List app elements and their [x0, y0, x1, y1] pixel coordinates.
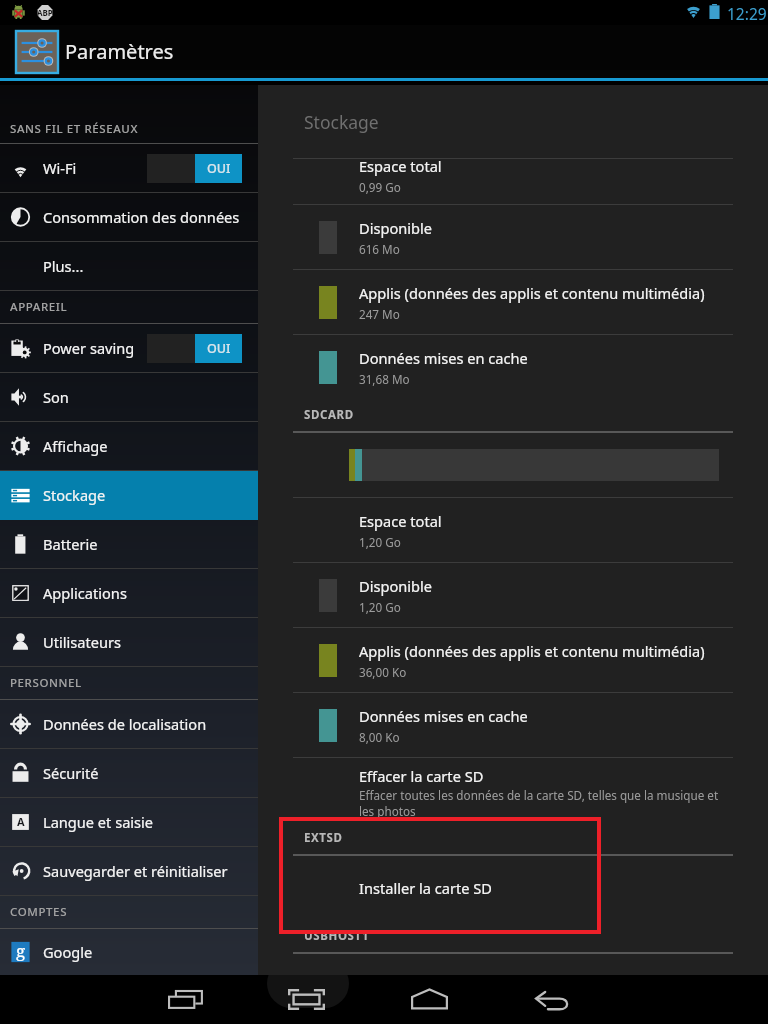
staticText: Effacer toutes les données de la carte S… [359, 787, 719, 820]
staticText: 247 Mo [359, 306, 400, 322]
staticText: Utilisateurs [43, 632, 121, 652]
button[interactable]: Plus... [0, 242, 258, 290]
staticText: Effacer la carte SD [359, 766, 484, 786]
staticText: Données de localisation [43, 714, 207, 734]
button[interactable]: Données mises en cache [258, 335, 768, 399]
button[interactable]: Installer la carte SD [258, 856, 768, 920]
staticText: APPAREIL [10, 299, 68, 315]
staticText: Applications [43, 583, 127, 603]
button[interactable]: A [0, 798, 258, 846]
staticText: g [16, 939, 26, 961]
staticText: Applis (données des applis et contenu mu… [359, 641, 768, 661]
button[interactable]: Wi-Fi [0, 144, 258, 192]
staticText: Données mises en cache [359, 706, 768, 726]
staticText: Stockage [43, 485, 106, 505]
button[interactable]: Recent apps [168, 991, 204, 1010]
staticText: Langue et saisie [43, 812, 154, 832]
staticText: 0,99 Go [359, 179, 401, 195]
staticText: Espace total [359, 156, 442, 176]
staticText: OUI [207, 160, 231, 177]
button[interactable]: g [0, 929, 258, 975]
staticText: Données mises en cache [359, 348, 768, 368]
staticText: Power saving [43, 338, 135, 358]
button[interactable]: Espace total [258, 498, 768, 562]
staticText: Sauvegarder et réinitialiser [43, 861, 228, 881]
button[interactable]: Disponible [258, 205, 768, 269]
button[interactable]: Stockage [0, 471, 258, 519]
staticText: ABP [37, 7, 53, 18]
button[interactable]: Screenshot [288, 989, 325, 1010]
button[interactable]: Applis (données des applis et contenu mu… [258, 628, 768, 692]
button[interactable]: Applications [0, 569, 258, 617]
staticText: 8,00 Ko [359, 729, 400, 745]
staticText: Disponible [359, 218, 768, 238]
staticText: Disponible [359, 576, 768, 596]
staticText: Affichage [43, 436, 108, 456]
button[interactable]: Applis (données des applis et contenu mu… [258, 270, 768, 334]
staticText: Google [43, 942, 93, 962]
staticText: Installer la carte SD [359, 878, 492, 898]
staticText: Paramètres [65, 38, 174, 65]
button[interactable]: Settings [15, 30, 59, 74]
button[interactable]: Disponible [258, 563, 768, 627]
staticText: USBHOST1 [304, 928, 369, 944]
staticText: 12:29 [727, 3, 767, 24]
staticText: Sécurité [43, 763, 99, 783]
staticText: SANS FIL ET RÉSEAUX [10, 121, 139, 137]
staticText: EXTSD [304, 830, 343, 846]
button[interactable]: Sauvegarder et réinitialiser [0, 847, 258, 895]
staticText: COMPTES [10, 904, 68, 920]
button[interactable]: Power saving [0, 324, 258, 372]
staticText: 31,68 Mo [359, 371, 410, 387]
staticText: Consommation des données [43, 207, 240, 227]
button[interactable]: Effacer la carte SD [258, 758, 768, 822]
staticText: Wi-Fi [43, 158, 77, 178]
staticText: A [17, 814, 25, 829]
staticText: PERSONNEL [10, 675, 82, 691]
staticText: 1,20 Go [359, 599, 401, 615]
staticText: OUI [207, 340, 231, 357]
staticText: Stockage [304, 110, 379, 134]
button[interactable]: Home [411, 989, 448, 1009]
button[interactable]: Affichage [0, 422, 258, 470]
button[interactable]: Espace total [258, 159, 768, 204]
button[interactable]: Données mises en cache [258, 693, 768, 757]
staticText: 36,00 Ko [359, 664, 407, 680]
button[interactable]: Back [535, 991, 569, 1010]
staticText: 1,20 Go [359, 534, 401, 550]
staticText: SDCARD [304, 407, 354, 423]
button[interactable]: Consommation des données [0, 193, 258, 241]
staticText: Batterie [43, 534, 98, 554]
button[interactable]: Son [0, 373, 258, 421]
staticText: 616 Mo [359, 241, 400, 257]
button[interactable]: Données de localisation [0, 700, 258, 748]
staticText: Plus... [43, 256, 84, 276]
staticText: Son [43, 387, 69, 407]
staticText: Espace total [359, 511, 768, 531]
staticText: Applis (données des applis et contenu mu… [359, 283, 768, 303]
button[interactable]: Batterie [0, 520, 258, 568]
button[interactable]: Utilisateurs [0, 618, 258, 666]
button[interactable]: Sécurité [0, 749, 258, 797]
